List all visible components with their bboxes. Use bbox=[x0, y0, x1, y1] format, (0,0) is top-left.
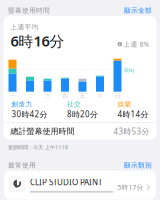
staticText: 六 bbox=[97, 93, 102, 99]
staticText: 五 bbox=[80, 93, 85, 99]
staticText: 四 bbox=[62, 93, 67, 99]
staticText: 社交 bbox=[67, 100, 81, 108]
staticText: 8時20分 bbox=[67, 109, 98, 119]
staticText: 日 bbox=[115, 93, 120, 99]
staticText: 43時53分 bbox=[113, 126, 149, 137]
staticText: 平均 bbox=[123, 68, 133, 74]
staticText: 4時14分 bbox=[117, 109, 148, 119]
staticText: 顯示全部 bbox=[124, 6, 152, 15]
button[interactable]: 顯示全部 bbox=[124, 6, 152, 15]
staticText: 創造力 bbox=[11, 100, 32, 108]
staticText: 上週 8% bbox=[123, 40, 149, 49]
staticText: 螢幕使用時間 bbox=[8, 6, 50, 15]
staticText: CLIP STUDIO PAINT bbox=[30, 177, 102, 187]
staticText: 三 bbox=[45, 93, 50, 99]
button[interactable]: CLIP STUDIO PAINT bbox=[4, 171, 156, 200]
staticText: 娛樂 bbox=[117, 100, 131, 108]
button[interactable]: 顯示類別 bbox=[124, 161, 152, 169]
staticText: 最常使用 bbox=[8, 161, 36, 169]
staticText: 更新時間：今天 上午11:18 bbox=[8, 144, 68, 151]
staticText: 一 bbox=[10, 93, 15, 99]
staticText: 6時16分 bbox=[10, 31, 64, 51]
staticText: 上週平均 bbox=[10, 23, 38, 31]
staticText: 二 bbox=[27, 93, 32, 99]
staticText: 30時42分 bbox=[11, 109, 47, 119]
staticText: 總計螢幕使用時間 bbox=[10, 126, 74, 136]
staticText: 5時17分 bbox=[117, 183, 143, 192]
staticText: 顯示類別 bbox=[124, 161, 152, 169]
